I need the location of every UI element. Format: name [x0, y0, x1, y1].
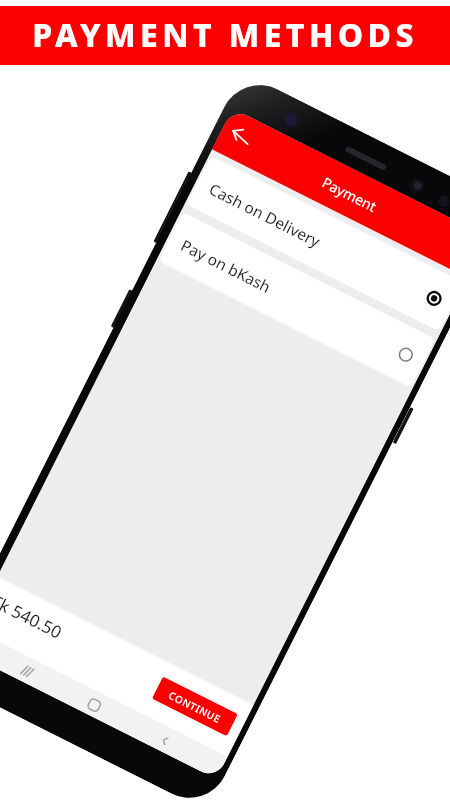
button[interactable]: Cash on Delivery — [186, 155, 450, 332]
staticText: CONTINUE — [166, 688, 224, 726]
staticText: Pay on bKash — [178, 234, 403, 361]
staticText: Cash on Delivery — [206, 178, 432, 305]
staticText: Payment — [319, 173, 380, 216]
button[interactable]: Recent apps — [12, 656, 42, 685]
button[interactable]: Back — [150, 725, 179, 755]
staticText: Tk 540.50 — [0, 589, 66, 644]
button[interactable]: Pay on bKash — [158, 212, 436, 388]
button[interactable]: CONTINUE — [152, 676, 238, 736]
staticText: PAYMENT METHODS — [32, 13, 418, 57]
button[interactable]: Back — [222, 117, 260, 155]
button[interactable]: Home — [79, 690, 109, 719]
